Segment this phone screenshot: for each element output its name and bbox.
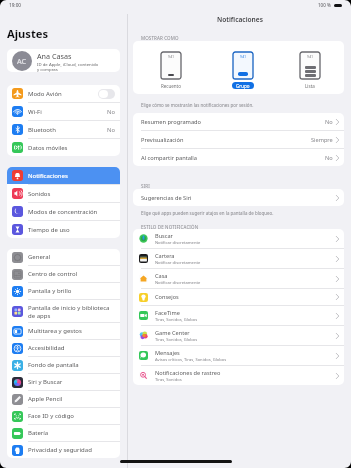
button[interactable]: Sonidos bbox=[7, 185, 120, 202]
staticText: Siri y Buscar bbox=[28, 378, 115, 386]
staticText: Notificaciones bbox=[217, 15, 263, 24]
staticText: Accesibilidad bbox=[28, 344, 115, 352]
button[interactable]: Pantalla y brillo bbox=[7, 283, 120, 299]
staticText: Bluetooth bbox=[28, 126, 107, 134]
staticText: SIRI bbox=[141, 183, 150, 189]
button[interactable]: Centro de control bbox=[7, 266, 120, 282]
button[interactable]: Tiempo de uso bbox=[7, 221, 120, 238]
staticText: Previsualización bbox=[141, 136, 311, 144]
button[interactable]: Sugerencias de Siri bbox=[133, 189, 344, 206]
staticText: Avisos críticos, Tiras, Sonidos, Globos bbox=[155, 357, 227, 363]
staticText: Datos móviles bbox=[28, 144, 115, 152]
staticText: General bbox=[28, 253, 115, 261]
staticText: Pantalla y brillo bbox=[28, 287, 115, 295]
button[interactable]: Privacidad y seguridad bbox=[7, 442, 120, 458]
staticText: Notificar discretamente bbox=[155, 280, 201, 286]
button[interactable]: Fondo de pantalla bbox=[7, 357, 120, 373]
button[interactable]: Game Center bbox=[133, 326, 344, 345]
staticText: Modo Avión bbox=[28, 90, 98, 98]
staticText: Sugerencias de Siri bbox=[141, 194, 336, 202]
staticText: Apple Pencil bbox=[28, 395, 115, 403]
staticText: 19:00 bbox=[9, 2, 22, 8]
button[interactable]: Modo Avión bbox=[7, 85, 120, 102]
staticText: Centro de control bbox=[28, 270, 115, 278]
staticText: Notificaciones bbox=[28, 172, 115, 180]
staticText: Batería bbox=[28, 429, 115, 437]
button[interactable]: Multitarea y gestos bbox=[7, 323, 120, 339]
staticText: No bbox=[107, 126, 115, 134]
button[interactable]: Consejos bbox=[133, 289, 344, 305]
staticText: ID de Apple, iCloud, contenido y compras bbox=[37, 61, 99, 72]
staticText: Tiras, Sonidos, Globos bbox=[155, 317, 198, 323]
staticText: Elige qué apps pueden sugerir atajos en … bbox=[141, 210, 274, 216]
button[interactable]: Notificaciones de rastreo bbox=[133, 366, 344, 385]
staticText: Sonidos bbox=[28, 190, 115, 198]
staticText: Notificar discretamente bbox=[155, 260, 201, 266]
staticText: Game Center bbox=[155, 329, 190, 337]
button[interactable]: Siri y Buscar bbox=[7, 374, 120, 390]
staticText: Wi-Fi bbox=[28, 108, 107, 116]
staticText: FaceTime bbox=[155, 309, 180, 317]
staticText: Resumen programado bbox=[141, 118, 325, 126]
staticText: Elige cómo se mostrarán las notificacion… bbox=[141, 102, 254, 108]
button[interactable]: Notificaciones bbox=[7, 167, 120, 184]
button[interactable]: Bluetooth bbox=[7, 121, 120, 138]
staticText: MOSTRAR COMO bbox=[141, 35, 179, 41]
staticText: Buscar bbox=[155, 232, 173, 240]
staticText: Siempre bbox=[311, 136, 333, 144]
button[interactable]: FaceTime bbox=[133, 306, 344, 325]
staticText: 100 % bbox=[318, 2, 331, 8]
staticText: Lista bbox=[305, 83, 315, 89]
staticText: Notificar discretamente bbox=[155, 240, 201, 246]
button[interactable]: Casa bbox=[133, 269, 344, 288]
button[interactable]: 9:41 bbox=[157, 52, 185, 89]
staticText: 9:41 bbox=[168, 55, 175, 59]
staticText: ESTILO DE NOTIFICACIÓN bbox=[141, 224, 199, 229]
staticText: Casa bbox=[155, 272, 168, 280]
staticText: Grupo bbox=[236, 83, 250, 89]
staticText: Tiempo de uso bbox=[28, 226, 115, 234]
button[interactable]: General bbox=[7, 249, 120, 265]
staticText: Cartera bbox=[155, 252, 175, 260]
button[interactable]: Previsualización bbox=[133, 131, 344, 148]
staticText: Al compartir pantalla bbox=[141, 154, 325, 162]
staticText: No bbox=[325, 154, 333, 162]
button[interactable]: Modos de concentración bbox=[7, 203, 120, 220]
staticText: Consejos bbox=[155, 293, 179, 301]
staticText: Multitarea y gestos bbox=[28, 327, 115, 335]
staticText: Fondo de pantalla bbox=[28, 361, 115, 369]
staticText: Tiras, Sonidos bbox=[155, 377, 182, 383]
button[interactable]: Face ID y código bbox=[7, 408, 120, 424]
staticText: Modos de concentración bbox=[28, 208, 115, 216]
button[interactable]: Buscar bbox=[133, 229, 344, 248]
button[interactable]: Wi-Fi bbox=[7, 103, 120, 120]
button[interactable]: Al compartir pantalla bbox=[133, 149, 344, 166]
staticText: Ajustes bbox=[7, 26, 49, 41]
button[interactable]: AC bbox=[7, 49, 120, 72]
button[interactable]: Cartera bbox=[133, 249, 344, 268]
staticText: 9:41 bbox=[240, 55, 247, 59]
button[interactable]: Mensajes bbox=[133, 346, 344, 365]
button[interactable]: Resumen programado bbox=[133, 113, 344, 130]
staticText: Notificaciones de rastreo bbox=[155, 369, 221, 377]
staticText: Tiras, Sonidos, Globos bbox=[155, 337, 198, 343]
button[interactable]: Batería bbox=[7, 425, 120, 441]
staticText: Privacidad y seguridad bbox=[28, 446, 115, 454]
button[interactable]: 9:41 bbox=[300, 52, 320, 89]
staticText: 9:41 bbox=[307, 55, 314, 59]
staticText: Face ID y código bbox=[28, 412, 115, 420]
button[interactable]: Accesibilidad bbox=[7, 340, 120, 356]
button[interactable]: 9:41 bbox=[232, 52, 254, 89]
staticText: Pantalla de inicio y biblioteca de apps bbox=[28, 304, 115, 319]
staticText: No bbox=[107, 108, 115, 116]
button[interactable]: Datos móviles bbox=[7, 139, 120, 156]
staticText: Recuento bbox=[161, 83, 181, 89]
staticText: No bbox=[325, 118, 333, 126]
button[interactable]: Apple Pencil bbox=[7, 391, 120, 407]
staticText: AC bbox=[17, 56, 27, 66]
staticText: Ana Casas bbox=[37, 51, 72, 61]
button[interactable]: Pantalla de inicio y biblioteca de apps bbox=[7, 300, 120, 322]
staticText: Mensajes bbox=[155, 349, 180, 357]
